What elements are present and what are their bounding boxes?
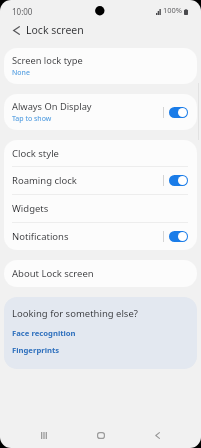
button[interactable]: Screen lock type [4, 48, 197, 84]
staticText: None [12, 68, 30, 78]
staticText: Face recognition [12, 328, 76, 338]
button[interactable]: Roaming clock [4, 167, 197, 194]
staticText: Always On Display [12, 100, 92, 113]
button[interactable]: Toggle on [169, 175, 188, 186]
staticText: Clock style [12, 147, 188, 160]
staticText: Fingerprints [12, 345, 60, 355]
button[interactable]: Home [82, 423, 120, 448]
staticText: Looking for something else? [12, 307, 138, 320]
staticText: 100% [163, 5, 183, 15]
button[interactable]: Recent apps [26, 423, 63, 448]
staticText: Roaming clock [12, 174, 163, 187]
staticText: Lock screen [26, 23, 84, 37]
button[interactable]: Notifications [4, 223, 197, 250]
staticText: Tap to show [12, 114, 52, 124]
button[interactable]: Toggle on [169, 231, 188, 242]
button[interactable]: Clock style [4, 140, 197, 166]
staticText: Screen lock type [12, 54, 83, 67]
button[interactable]: Widgets [4, 195, 197, 222]
staticText: Notifications [12, 230, 163, 243]
staticText: 10:00 [12, 6, 33, 17]
button[interactable]: Navigate up [4, 20, 28, 40]
button[interactable]: Face recognition [12, 328, 76, 338]
staticText: About Lock screen [12, 267, 188, 280]
button[interactable]: Fingerprints [12, 345, 60, 355]
button[interactable]: Toggle on [169, 107, 188, 118]
button[interactable]: Always On Display [4, 94, 197, 130]
button[interactable]: About Lock screen [4, 260, 197, 287]
staticText: Widgets [12, 202, 188, 215]
button[interactable]: Back [138, 423, 176, 448]
